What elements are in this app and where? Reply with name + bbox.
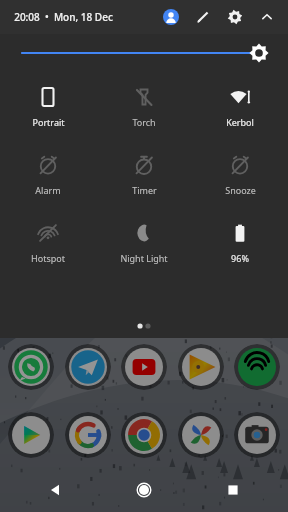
staticText: Portrait [32,116,65,128]
staticText: Hotspot [31,252,65,264]
button[interactable]: WhatsApp [8,344,54,390]
button[interactable]: Portrait [0,84,96,130]
button[interactable]: Kerbol [192,84,288,130]
button[interactable]: Telegram [65,344,111,390]
button[interactable]: Home [124,470,164,510]
button[interactable]: Recents [213,470,253,510]
staticText: Timer [132,184,157,196]
button[interactable]: Edit [192,6,214,28]
button[interactable]: Settings [224,6,246,28]
staticText: Snooze [225,184,256,196]
button[interactable]: Play Music [178,344,224,390]
button[interactable]: 96% [192,220,288,266]
button[interactable]: Chrome [121,412,167,458]
button[interactable]: YouTube [121,344,167,390]
button[interactable]: Brightness [22,34,266,72]
staticText: Alarm [35,184,61,196]
staticText: Kerbol [226,116,254,128]
button[interactable]: User [160,6,182,28]
button[interactable]: Timer [96,152,192,198]
button[interactable]: Alarm [0,152,96,198]
button[interactable]: Night Light [96,220,192,266]
staticText: Night Light [120,252,168,264]
button[interactable]: Back [35,470,75,510]
staticText: 96% [231,252,249,264]
button[interactable]: Hotspot [0,220,96,266]
button[interactable]: Photos [178,412,224,458]
button[interactable]: Torch [96,84,192,130]
button[interactable]: Camera [234,412,280,458]
button[interactable]: Play Store [8,412,54,458]
button[interactable]: Google [65,412,111,458]
button[interactable]: Spotify [234,344,280,390]
button[interactable]: Snooze [192,152,288,198]
staticText: Torch [132,116,156,128]
button[interactable]: Collapse [256,6,278,28]
staticText: 20:08 • Mon, 18 Dec [14,10,113,24]
